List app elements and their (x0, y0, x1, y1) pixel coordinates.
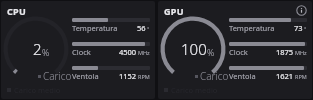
button[interactable]: Clock (72, 39, 150, 60)
staticText: 56 (137, 23, 146, 33)
button[interactable]: Clock (229, 39, 307, 60)
staticText: Ventola (72, 71, 99, 81)
staticText: 2 (33, 39, 42, 59)
button[interactable]: Info (296, 5, 307, 16)
staticText: Carico (200, 69, 229, 83)
staticText: 73 (294, 23, 303, 33)
staticText: Clock (72, 47, 91, 57)
staticText: 1621 (276, 71, 294, 81)
staticText: ° (304, 25, 307, 32)
staticText: % (42, 46, 50, 58)
button[interactable]: CPU (7, 5, 27, 17)
staticText: % (207, 46, 215, 58)
staticText: MHz (138, 49, 150, 56)
staticText: Temperatura (229, 23, 275, 33)
button[interactable]: Ventola (72, 63, 150, 84)
button[interactable]: Carico medio (164, 85, 218, 95)
staticText: 4500 (119, 47, 137, 57)
staticText: Clock (229, 47, 248, 57)
staticText: GPU (164, 5, 184, 17)
staticText: 1152 (119, 71, 137, 81)
staticText: Ventola (229, 71, 256, 81)
staticText: RPM (295, 73, 307, 80)
staticText: RPM (138, 73, 150, 80)
button[interactable]: GPU (158, 1, 312, 99)
staticText: 1875 (276, 47, 294, 57)
button[interactable]: Ventola (229, 63, 307, 84)
staticText: Carico (43, 69, 72, 83)
staticText: Temperatura (72, 23, 118, 33)
staticText: MHz (295, 49, 307, 56)
button[interactable]: Carico medio (7, 85, 61, 95)
button[interactable]: GPU (164, 5, 184, 17)
staticText: 100 (181, 39, 207, 59)
button[interactable]: CPU (1, 1, 155, 99)
staticText: CPU (7, 5, 27, 17)
staticText: ° (147, 25, 150, 32)
button[interactable]: Temperatura (72, 15, 150, 36)
button[interactable]: Temperatura (229, 15, 307, 36)
